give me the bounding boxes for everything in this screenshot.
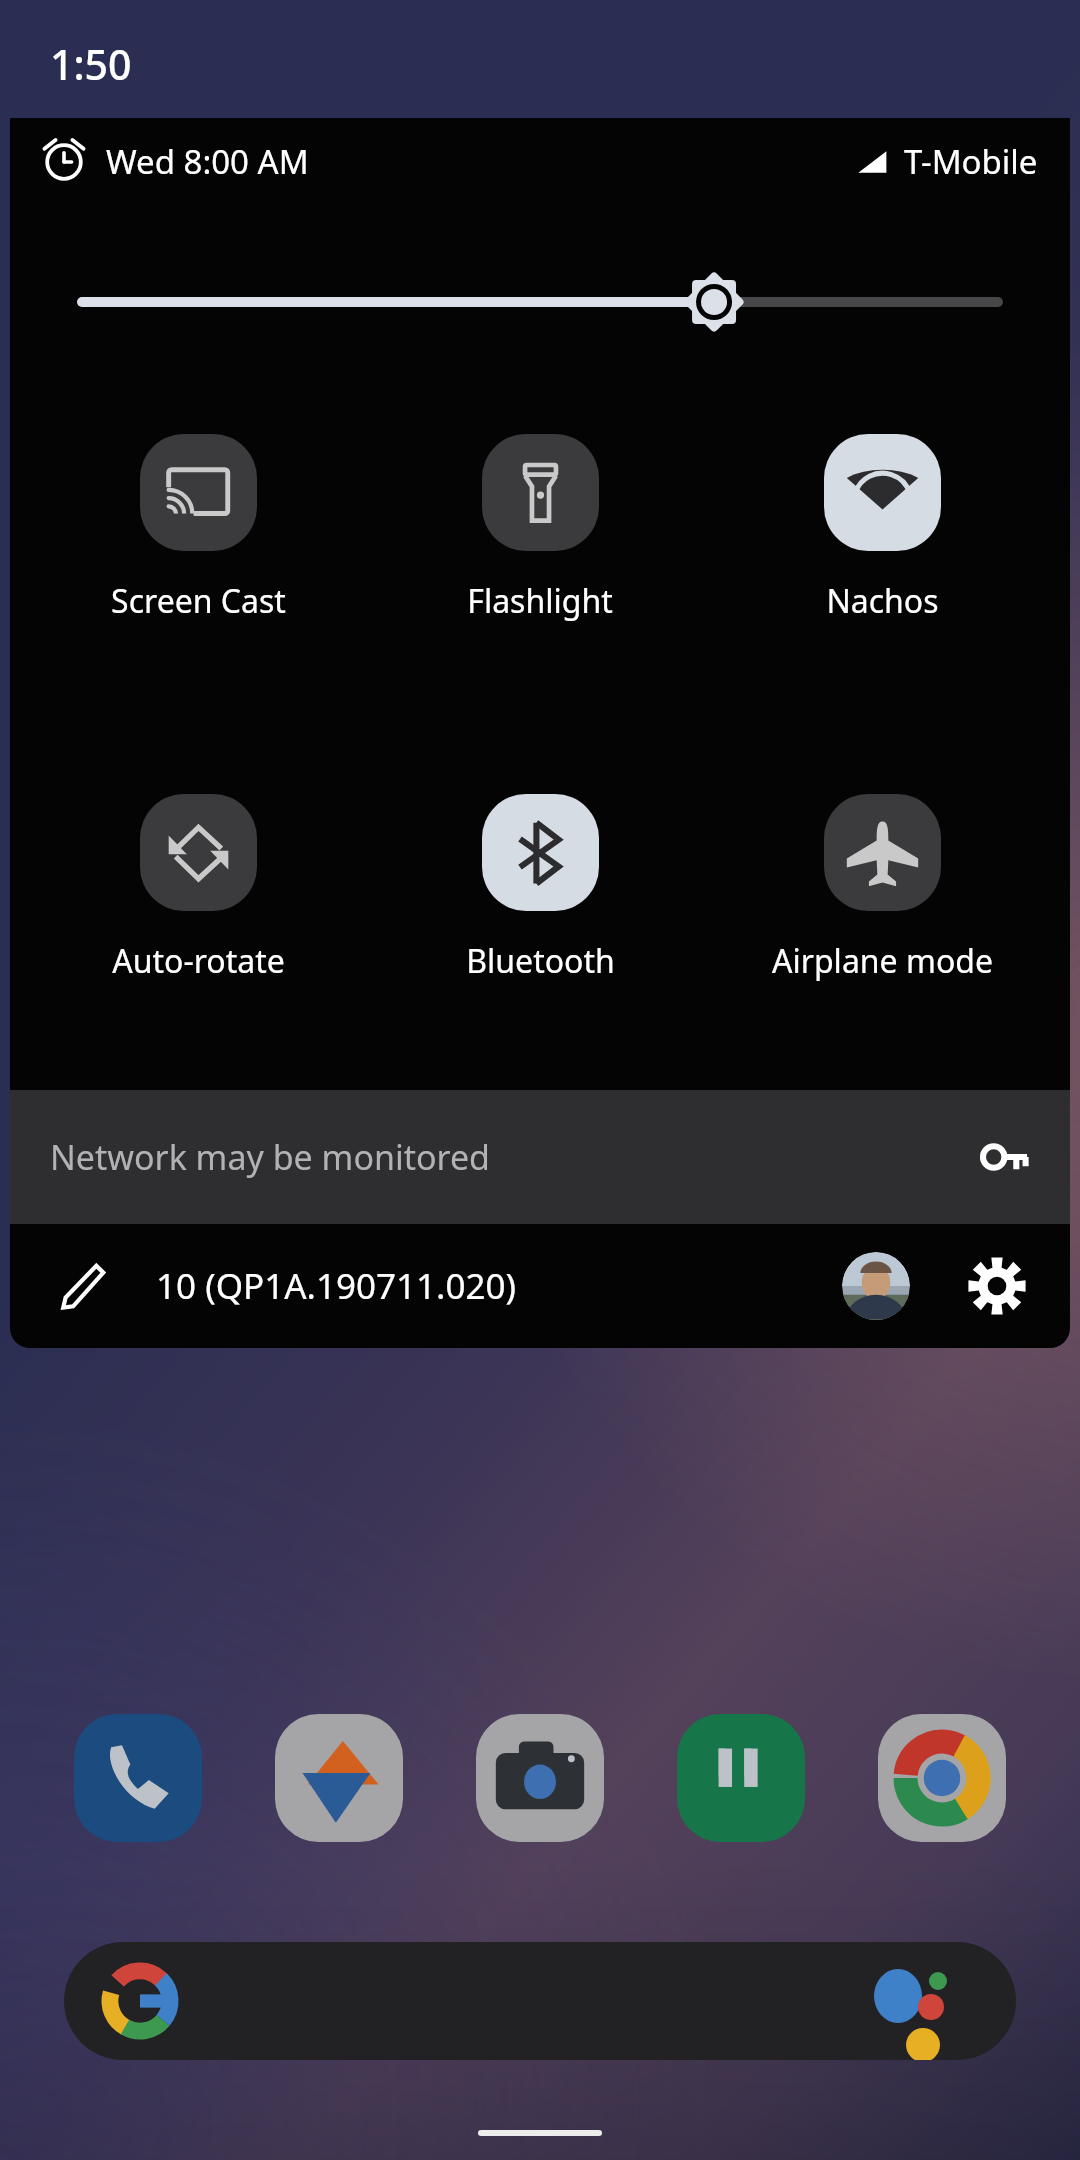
button[interactable]: Switch user [842, 1252, 910, 1320]
button[interactable]: Flashlight [385, 434, 695, 669]
button[interactable]: Edit tiles [54, 1257, 112, 1315]
staticText: 1:50 [50, 36, 132, 92]
staticText: Nachos [826, 579, 939, 623]
button[interactable]: Hangouts [677, 1714, 805, 1842]
staticText: Airplane mode [772, 939, 993, 983]
other: VPN enabled [976, 1128, 1034, 1186]
button[interactable]: Drive [275, 1714, 403, 1842]
staticText: T-Mobile [904, 139, 1038, 184]
button[interactable]: Camera [476, 1714, 604, 1842]
staticText: 10 (QP1A.190711.020) [156, 1262, 516, 1310]
button[interactable]: Phone [74, 1714, 202, 1842]
button[interactable]: Airplane mode [727, 794, 1037, 1029]
staticText: Auto-rotate [112, 939, 285, 983]
staticText: Screen Cast [111, 579, 286, 623]
button[interactable]: Settings [966, 1255, 1028, 1317]
button[interactable]: Search [64, 1942, 1016, 2060]
button[interactable]: Network may be monitored [10, 1090, 1070, 1224]
button[interactable]: Screen Cast [43, 434, 353, 669]
button[interactable]: Nachos [727, 434, 1037, 669]
staticText: Flashlight [467, 579, 613, 623]
staticText: Bluetooth [466, 939, 615, 983]
staticText: Wed 8:00 AM [106, 139, 309, 184]
staticText: Network may be monitored [50, 1134, 491, 1180]
button[interactable]: Auto-rotate [43, 794, 353, 1029]
button[interactable]: Bluetooth [385, 794, 695, 1029]
button[interactable]: Brightness [68, 256, 1012, 348]
button[interactable]: Chrome [878, 1714, 1006, 1842]
